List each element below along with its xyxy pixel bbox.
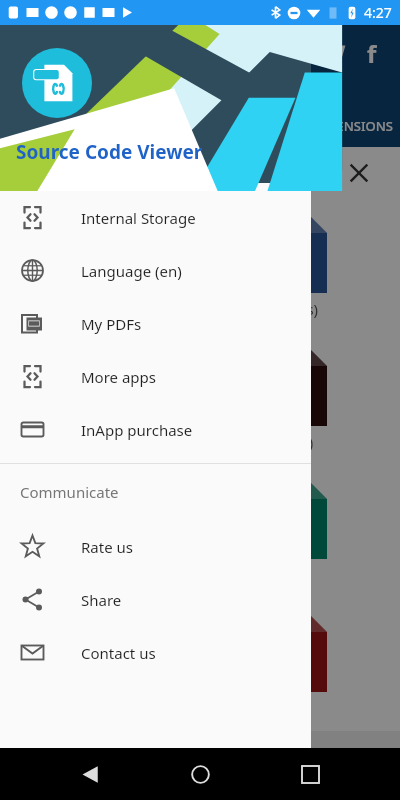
staticText: Language (en): [81, 261, 182, 281]
button[interactable]: AS: [0, 199, 400, 332]
staticText: Internal Storage: [81, 208, 196, 228]
staticText: My PDFs: [81, 314, 142, 334]
button[interactable]: Contact us: [0, 626, 311, 679]
button[interactable]: Share: [0, 573, 311, 626]
staticText: ActionScript (.as): [201, 299, 319, 319]
staticText: EXTENSIONS: [314, 117, 394, 135]
button[interactable]: My PDFs: [0, 297, 311, 350]
staticText: Source Code Viewer: [16, 139, 203, 165]
staticText: 4:27: [364, 3, 392, 22]
button[interactable]: COFFEE: [0, 332, 400, 465]
staticText: InApp purchase: [81, 420, 193, 440]
button[interactable]: HAML: [0, 598, 400, 731]
button[interactable]: DART: [0, 465, 400, 598]
button[interactable]: Internal Storage: [0, 191, 311, 244]
staticText: Contact us: [81, 643, 156, 663]
button[interactable]: Back: [70, 754, 110, 794]
staticText: Communicate: [20, 482, 119, 502]
staticText: Share: [81, 590, 122, 610]
button[interactable]: Rate us: [0, 520, 311, 573]
staticText: More apps: [81, 367, 156, 387]
button[interactable]: Language (en): [0, 244, 311, 297]
staticText: Rate us: [81, 537, 133, 557]
button[interactable]: Cart: [318, 39, 346, 67]
button[interactable]: More apps: [0, 350, 311, 403]
button[interactable]: Home: [180, 754, 220, 794]
button[interactable]: InApp purchase: [0, 403, 311, 456]
button[interactable]: Facebook: [358, 37, 386, 65]
staticText: f: [367, 37, 377, 65]
button[interactable]: Close: [342, 156, 376, 190]
staticText: Coffee (.coffee): [207, 432, 314, 452]
button[interactable]: Recents: [290, 754, 330, 794]
